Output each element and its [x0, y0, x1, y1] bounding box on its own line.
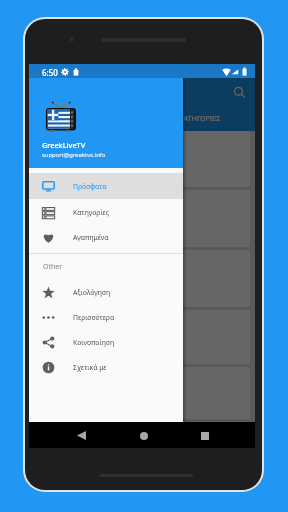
staticText: Περισσότερα	[73, 313, 115, 322]
button[interactable]: Σχετικά με	[29, 354, 183, 380]
button[interactable]	[31, 190, 250, 247]
button[interactable]: Αγαπημένα	[29, 224, 183, 250]
staticText: Other	[43, 262, 63, 272]
staticText: support@greektvx.info	[42, 151, 106, 159]
button[interactable]: Πρόσφατα	[29, 173, 183, 199]
staticText: Κοινοποίηση	[73, 338, 115, 347]
staticText: Πρόσφατα	[73, 182, 107, 191]
button[interactable]: Περισσότερα	[29, 304, 183, 330]
button[interactable]: Search	[231, 84, 247, 100]
staticText: Σχετικά με	[73, 363, 107, 372]
button[interactable]	[31, 367, 250, 419]
staticText: Αξιολόγηση	[73, 288, 111, 297]
button[interactable]	[31, 131, 250, 187]
button[interactable]: Κατηγορίες	[29, 199, 183, 225]
button[interactable]: Home	[133, 425, 154, 446]
button[interactable]: Recent apps	[194, 425, 215, 446]
button[interactable]: Back	[71, 425, 92, 446]
button[interactable]: Κοινοποίηση	[29, 329, 183, 355]
button[interactable]: Αξιολόγηση	[29, 279, 183, 305]
staticText: Αγαπημένα	[73, 233, 109, 242]
button[interactable]	[31, 310, 250, 364]
staticText: Κατηγορίες	[73, 208, 109, 217]
staticText: GreekLiveTV	[42, 140, 86, 150]
staticText: ΚΑΤΗΓΟΡΙΕΣ	[179, 114, 221, 124]
staticText: 6:50	[42, 67, 58, 78]
button[interactable]	[31, 250, 250, 307]
